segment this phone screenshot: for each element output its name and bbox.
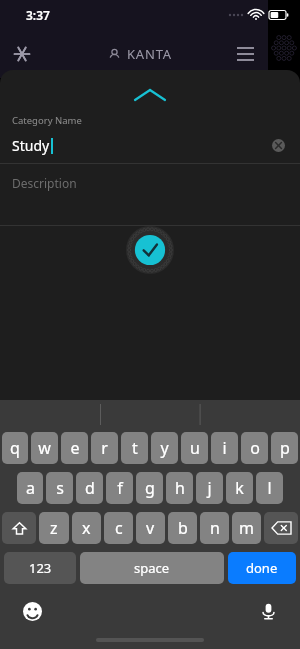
button[interactable]: v (136, 512, 165, 544)
button[interactable]: d (76, 472, 103, 504)
staticText: i (222, 437, 227, 459)
button[interactable]: t (121, 432, 148, 464)
staticText: c (115, 517, 123, 539)
staticText: 3:37 (26, 7, 50, 23)
button[interactable]: q (2, 432, 28, 464)
button[interactable]: r (91, 432, 118, 464)
staticText: d (85, 477, 95, 499)
staticText: v (146, 517, 155, 539)
button[interactable]: Voice input (254, 597, 282, 625)
button[interactable]: App logo (9, 41, 35, 67)
button[interactable]: f (106, 472, 133, 504)
staticText: done (246, 559, 278, 577)
button[interactable]: space (80, 552, 224, 584)
button[interactable]: Shift (2, 512, 36, 544)
button[interactable]: Backspace (264, 512, 298, 544)
staticText: h (175, 477, 185, 499)
staticText: z (50, 517, 58, 539)
button[interactable]: h (166, 472, 193, 504)
staticText: q (10, 437, 20, 459)
staticText: space (134, 559, 170, 577)
staticText: Study (12, 136, 50, 155)
button[interactable]: KANTA (108, 45, 172, 63)
button[interactable]: l (256, 472, 283, 504)
button[interactable]: g (136, 472, 163, 504)
staticText: s (56, 477, 64, 499)
button[interactable]: done (228, 552, 296, 584)
button[interactable]: a (17, 472, 43, 504)
button[interactable]: n (200, 512, 229, 544)
staticText: w (38, 437, 51, 459)
staticText: m (239, 517, 254, 539)
staticText: KANTA (127, 45, 172, 63)
staticText: Category Name (12, 114, 82, 127)
staticText: y (160, 437, 169, 459)
staticText: Description (12, 175, 77, 191)
staticText: u (190, 437, 200, 459)
button[interactable]: i (211, 432, 238, 464)
button[interactable]: p (271, 432, 298, 464)
button[interactable]: m (232, 512, 261, 544)
button[interactable]: 123 (4, 552, 76, 584)
button[interactable]: b (168, 512, 197, 544)
staticText: a (26, 477, 35, 499)
staticText: x (82, 517, 91, 539)
button[interactable]: s (46, 472, 73, 504)
button[interactable]: y (151, 432, 178, 464)
button[interactable]: w (31, 432, 58, 464)
button[interactable]: Emoji (18, 597, 46, 625)
staticText: p (280, 437, 290, 459)
button[interactable]: o (241, 432, 268, 464)
button[interactable]: c (104, 512, 133, 544)
staticText: o (250, 437, 260, 459)
staticText: g (145, 477, 155, 499)
button[interactable]: k (226, 472, 253, 504)
staticText: f (117, 477, 123, 499)
staticText: l (267, 477, 272, 499)
staticText: j (207, 477, 212, 499)
button[interactable]: z (39, 512, 69, 544)
button[interactable]: Confirm (126, 226, 174, 274)
staticText: r (101, 437, 108, 459)
button[interactable]: x (72, 512, 101, 544)
button[interactable]: Clear text (267, 134, 289, 156)
staticText: n (210, 517, 220, 539)
button[interactable]: u (181, 432, 208, 464)
button[interactable]: Collapse (126, 84, 174, 104)
button[interactable]: e (61, 432, 88, 464)
staticText: t (132, 437, 138, 459)
button[interactable]: Description (0, 164, 300, 225)
staticText: k (235, 477, 244, 499)
button[interactable]: j (196, 472, 223, 504)
button[interactable]: Menu (230, 39, 260, 69)
staticText: e (70, 437, 80, 459)
staticText: 123 (29, 559, 52, 577)
staticText: b (178, 517, 188, 539)
